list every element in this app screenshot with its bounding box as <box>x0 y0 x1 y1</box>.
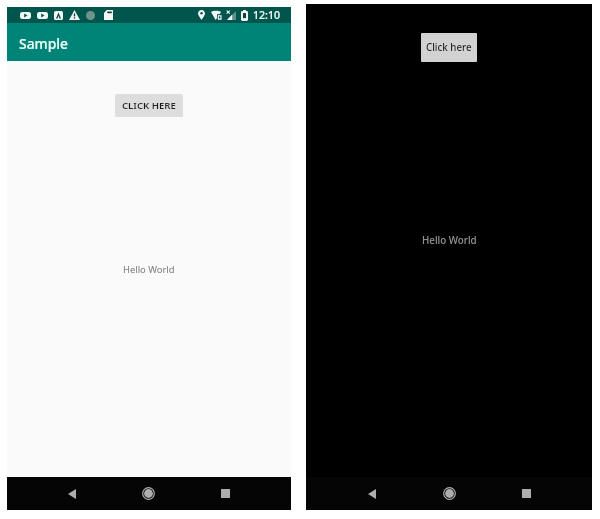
button[interactable]: Recents <box>488 477 565 510</box>
button[interactable]: Home <box>411 477 488 510</box>
staticText: Click here <box>426 41 472 54</box>
staticText: 12:10 <box>253 8 281 22</box>
staticText: Hello World <box>123 263 175 276</box>
button[interactable]: Click here <box>421 33 477 62</box>
button[interactable]: CLICK HERE <box>115 94 183 117</box>
staticText: CLICK HERE <box>122 99 176 112</box>
button[interactable]: Back <box>34 477 110 510</box>
button[interactable]: Back <box>333 477 411 510</box>
button[interactable]: Recents <box>187 477 264 510</box>
staticText: Sample <box>19 34 69 53</box>
staticText: Hello World <box>422 234 477 247</box>
button[interactable]: Home <box>110 477 187 510</box>
